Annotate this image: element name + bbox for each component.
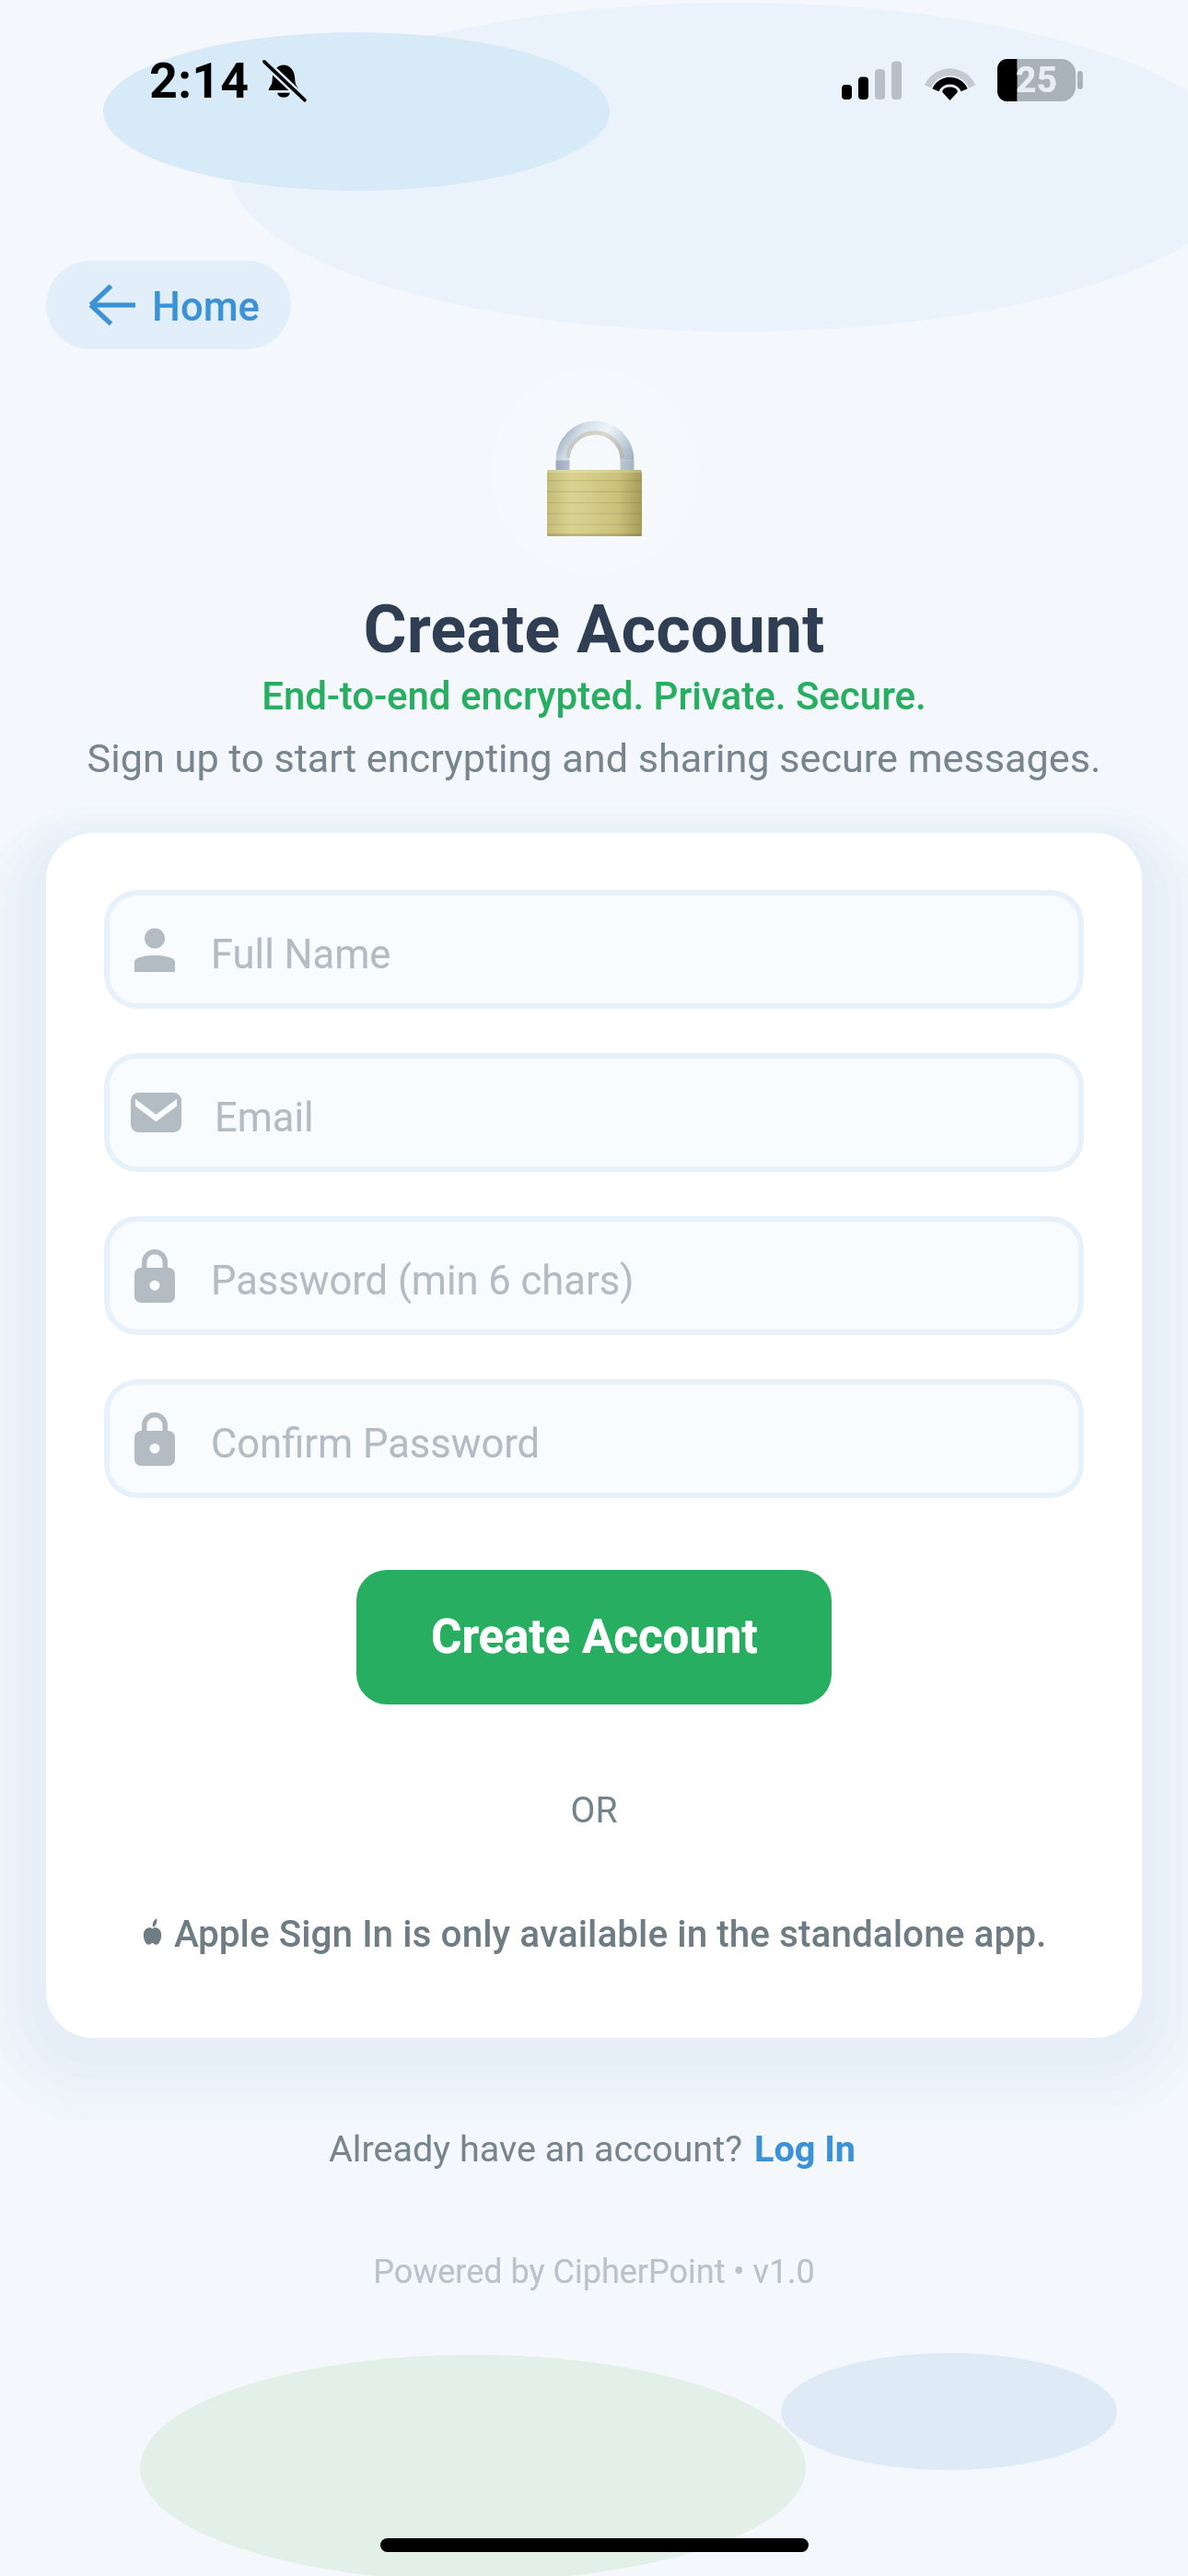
button[interactable]: Create Account: [356, 1570, 832, 1704]
staticText: Home: [152, 284, 260, 331]
button[interactable]: Email: [104, 1053, 1084, 1172]
other: Encrypted: [547, 420, 642, 536]
staticText: Already have an account?: [329, 2127, 751, 2170]
button[interactable]: Confirm Password: [104, 1379, 1084, 1498]
button[interactable]: Home: [46, 261, 291, 349]
staticText: End-to-end encrypted. Private. Secure.: [0, 673, 1188, 719]
button[interactable]: Password (min 6 chars): [104, 1216, 1084, 1335]
other: Cellular signal: [842, 61, 903, 100]
button[interactable]: Full Name: [104, 890, 1084, 1009]
staticText: Create Account: [431, 1610, 758, 1665]
staticText: Email: [215, 1095, 314, 1142]
staticText: Log In: [754, 2127, 856, 2170]
staticText: 25: [1016, 59, 1057, 101]
button[interactable]: Log In: [751, 2122, 859, 2175]
staticText: Powered by CipherPoint • v1.0: [0, 2253, 1188, 2291]
staticText: OR: [104, 1789, 1084, 1832]
other: Battery 25 percent: [997, 59, 1083, 101]
staticText: 2:14: [149, 52, 250, 110]
staticText: Create Account: [0, 591, 1188, 668]
staticText: Apple Sign In is only available in the s…: [174, 1912, 1047, 1955]
staticText: Confirm Password: [211, 1421, 541, 1468]
staticText: Sign up to start encrypting and sharing …: [0, 735, 1188, 782]
staticText: Password (min 6 chars): [211, 1258, 635, 1305]
other: Silent mode: [263, 61, 304, 101]
staticText: Full Name: [211, 931, 391, 978]
other: Wi-Fi: [924, 62, 976, 100]
